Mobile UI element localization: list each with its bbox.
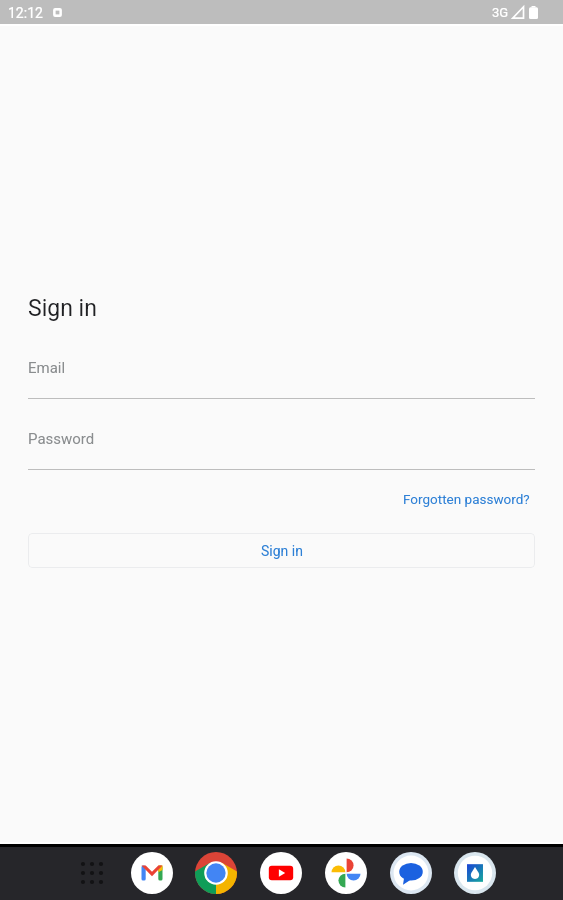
staticText: 3G	[492, 5, 509, 20]
staticText: 12:12	[8, 5, 43, 21]
button[interactable]: Security app	[453, 851, 497, 895]
button[interactable]: Messages	[389, 851, 433, 895]
button[interactable]: Photos	[324, 851, 368, 895]
staticText: Email	[28, 359, 66, 377]
staticText: Sign in	[261, 543, 303, 559]
button[interactable]: Sign in	[28, 533, 535, 568]
staticText: Password	[28, 430, 95, 448]
button[interactable]: Forgotten password?	[396, 486, 537, 512]
staticText: Forgotten password?	[403, 491, 530, 507]
button[interactable]: Chrome	[194, 851, 238, 895]
button[interactable]: Gmail	[130, 851, 174, 895]
button[interactable]: YouTube	[259, 851, 303, 895]
button[interactable]: All apps	[72, 853, 112, 893]
staticText: Sign in	[28, 295, 97, 322]
